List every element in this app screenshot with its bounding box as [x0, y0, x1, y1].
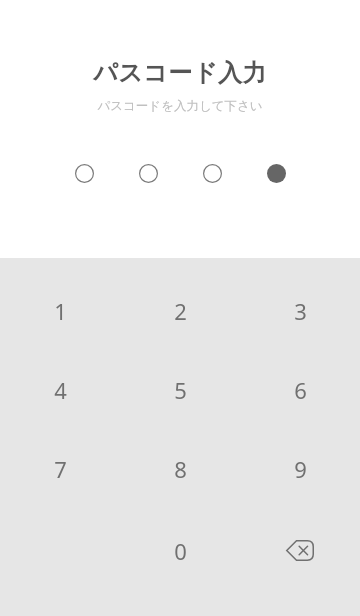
button[interactable]: Backspace — [264, 524, 336, 577]
staticText: 3 — [294, 296, 307, 326]
button[interactable]: 9 — [264, 442, 336, 495]
staticText: 1 — [54, 296, 67, 326]
staticText: 0 — [174, 536, 187, 566]
button[interactable]: 7 — [24, 442, 96, 495]
button[interactable]: 6 — [264, 363, 336, 416]
staticText: 5 — [174, 375, 187, 405]
staticText: パスコードを入力して下さい — [97, 98, 263, 114]
button[interactable]: 0 — [144, 524, 216, 577]
staticText: 4 — [54, 375, 67, 405]
button[interactable]: 1 — [24, 284, 96, 337]
staticText: 6 — [294, 375, 307, 405]
staticText: 8 — [174, 454, 187, 484]
button[interactable]: 8 — [144, 442, 216, 495]
staticText: 7 — [54, 454, 67, 484]
button[interactable]: 2 — [144, 284, 216, 337]
button[interactable]: 3 — [264, 284, 336, 337]
staticText: 9 — [294, 454, 307, 484]
button[interactable]: 4 — [24, 363, 96, 416]
staticText: パスコード入力 — [93, 58, 267, 88]
button[interactable]: 5 — [144, 363, 216, 416]
staticText: 2 — [174, 296, 187, 326]
